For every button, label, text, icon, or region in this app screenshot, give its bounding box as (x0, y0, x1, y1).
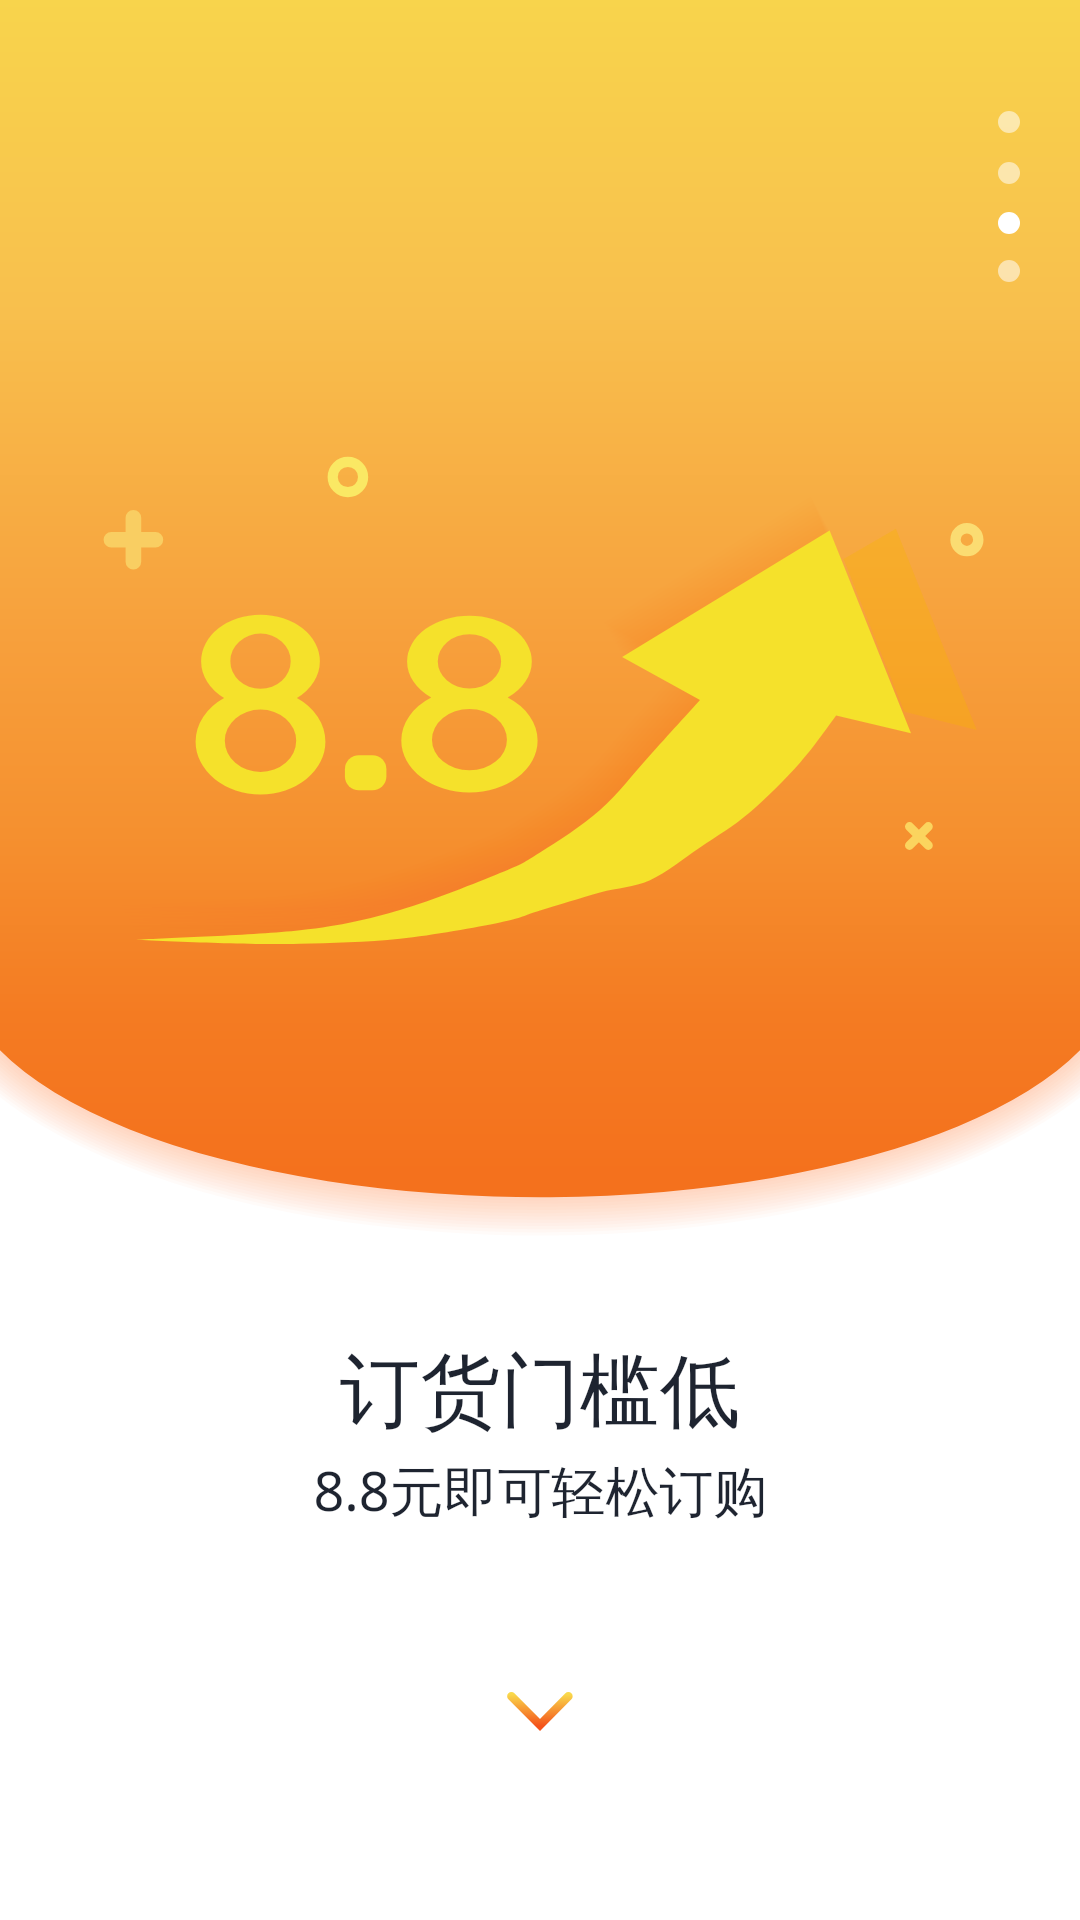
button[interactable]: Scroll down (480, 1660, 600, 1770)
button[interactable]: Page 4 (984, 260, 1034, 282)
staticText: 8.8元即可轻松订购 (313, 1453, 768, 1527)
button[interactable]: Page 3 (984, 212, 1034, 234)
staticText: 订货门槛低 (340, 1342, 740, 1443)
button[interactable]: Page 2 (984, 162, 1034, 184)
button[interactable]: Page 1 (984, 111, 1034, 133)
